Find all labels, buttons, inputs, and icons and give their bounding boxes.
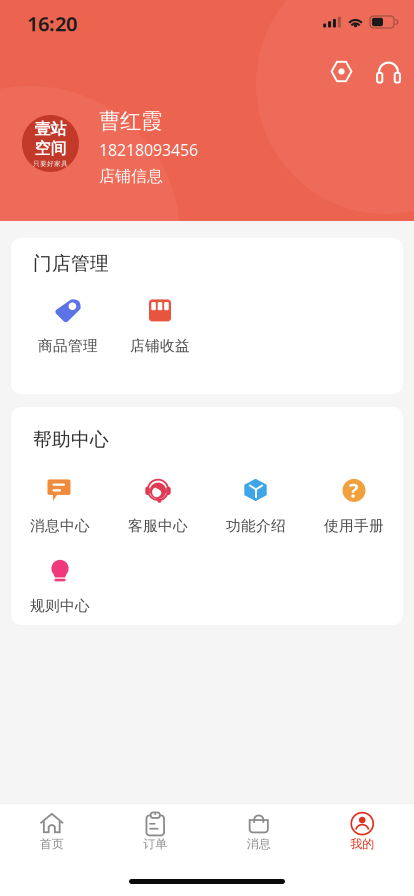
staticText: 客服中心: [128, 517, 188, 535]
staticText: 店铺信息: [99, 166, 163, 186]
button[interactable]: 消息: [207, 807, 310, 855]
staticText: 我的: [350, 837, 374, 851]
staticText: 订单: [143, 837, 167, 851]
staticText: 消息中心: [30, 517, 90, 535]
staticText: 只要好家具: [33, 160, 68, 168]
button[interactable]: 功能介绍: [207, 478, 305, 535]
staticText: 门店管理: [33, 252, 109, 275]
button[interactable]: 消息中心: [11, 478, 109, 535]
staticText: ?: [349, 477, 359, 503]
staticText: 空间: [34, 139, 66, 158]
staticText: 曹红霞: [99, 108, 162, 134]
button[interactable]: 商品管理: [22, 298, 114, 355]
staticText: 商品管理: [38, 337, 98, 355]
button[interactable]: Scan: [330, 60, 353, 83]
staticText: 首页: [40, 837, 64, 851]
staticText: 消息: [247, 837, 271, 851]
staticText: 使用手册: [324, 517, 384, 535]
button[interactable]: 订单: [103, 807, 207, 855]
button[interactable]: 我的: [310, 807, 414, 855]
staticText: 店铺收益: [130, 337, 190, 355]
staticText: 功能介绍: [226, 517, 286, 535]
button[interactable]: Customer support: [377, 60, 400, 83]
button[interactable]: 客服中心: [109, 478, 207, 535]
button[interactable]: 规则中心: [11, 558, 109, 615]
button[interactable]: 首页: [0, 807, 103, 855]
button[interactable]: ?: [305, 478, 403, 535]
staticText: 18218093456: [99, 139, 198, 160]
staticText: 规则中心: [30, 597, 90, 615]
staticText: 16:20: [27, 10, 77, 37]
staticText: 帮助中心: [33, 428, 109, 451]
staticText: 壹站: [34, 119, 66, 139]
button[interactable]: 店铺收益: [114, 298, 206, 355]
